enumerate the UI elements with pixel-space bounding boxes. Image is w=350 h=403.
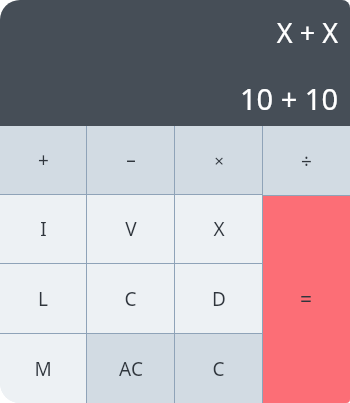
staticText: × [214, 149, 224, 172]
button[interactable]: Minus [87, 126, 174, 194]
staticText: C [124, 286, 137, 312]
staticText: I [40, 216, 47, 242]
button[interactable]: AC [87, 334, 174, 403]
staticText: X [213, 216, 225, 242]
button[interactable]: Equals [263, 196, 350, 403]
staticText: X + X [276, 14, 338, 51]
button[interactable]: Divide [263, 126, 350, 195]
button[interactable]: X [175, 195, 262, 263]
button[interactable]: Plus [0, 126, 86, 194]
staticText: – [126, 147, 136, 173]
button[interactable]: Multiply [175, 126, 262, 194]
staticText: AC [119, 356, 143, 382]
staticText: L [38, 286, 48, 312]
staticText: + [38, 147, 49, 173]
staticText: = [300, 285, 313, 314]
staticText: D [212, 286, 226, 312]
button[interactable]: I [0, 195, 86, 263]
staticText: M [34, 356, 52, 382]
button[interactable]: C [175, 334, 262, 403]
button[interactable]: D [175, 264, 262, 333]
button[interactable]: V [87, 195, 174, 263]
button[interactable]: C [87, 264, 174, 333]
staticText: 10 + 10 [239, 79, 338, 118]
staticText: V [125, 216, 137, 242]
button[interactable]: M [0, 334, 86, 403]
staticText: ÷ [301, 148, 312, 174]
button[interactable]: L [0, 264, 86, 333]
staticText: C [212, 356, 225, 382]
